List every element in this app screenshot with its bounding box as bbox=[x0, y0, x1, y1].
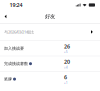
staticText: 完成挑战赛数 bbox=[4, 61, 28, 66]
staticText: 好友 bbox=[45, 13, 55, 20]
staticText: 26 bbox=[64, 43, 70, 50]
button[interactable]: Back bbox=[0, 10, 10, 23]
staticText: 6 bbox=[64, 74, 67, 81]
staticText: 与2026/03/21相比 bbox=[4, 29, 34, 34]
button[interactable]: 奖牌 bbox=[0, 72, 100, 87]
button[interactable]: 完成挑战赛数 bbox=[0, 56, 100, 71]
staticText: +4 bbox=[64, 66, 68, 69]
staticText: 加入挑战赛 bbox=[4, 46, 24, 51]
button[interactable]: 与2026/03/21相比 bbox=[0, 23, 100, 40]
staticText: 19:24 bbox=[9, 1, 22, 9]
staticText: 20 bbox=[64, 58, 70, 65]
staticText: +1 bbox=[64, 81, 68, 85]
staticText: 奖牌 bbox=[4, 77, 12, 81]
button[interactable]: 加入挑战赛 bbox=[0, 41, 100, 56]
staticText: +5 bbox=[64, 50, 68, 54]
